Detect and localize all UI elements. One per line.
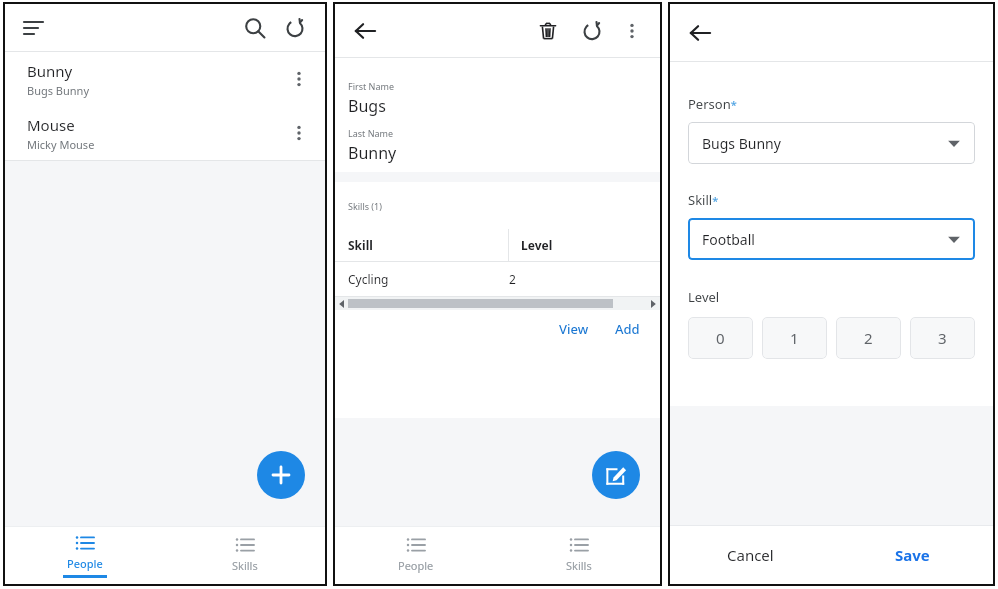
staticText: View <box>559 320 589 338</box>
staticText: People <box>398 558 434 573</box>
button[interactable]: 1 <box>762 317 827 359</box>
button[interactable]: Delete <box>532 15 564 47</box>
button[interactable]: People <box>335 527 497 584</box>
button[interactable]: More options <box>618 17 646 45</box>
button[interactable]: 2 <box>836 317 901 359</box>
button[interactable]: Back <box>684 17 716 49</box>
staticText: Last Name <box>348 127 394 139</box>
button[interactable]: Mouse <box>5 106 325 160</box>
staticText: People <box>67 556 103 571</box>
staticText: Bugs Bunny <box>702 134 947 153</box>
staticText: First Name <box>348 80 394 92</box>
button[interactable]: More options <box>285 119 313 147</box>
button[interactable]: Skills <box>497 527 660 584</box>
staticText: Football <box>702 230 947 249</box>
button[interactable]: Football <box>688 218 975 260</box>
staticText: Person* <box>688 95 737 113</box>
button[interactable]: Refresh <box>279 12 311 44</box>
button[interactable]: Add <box>609 316 646 342</box>
staticText: 0 <box>716 328 725 348</box>
button[interactable]: Save <box>831 526 993 584</box>
button[interactable]: Refresh <box>576 15 608 47</box>
staticText: Skills <box>232 558 258 573</box>
button[interactable]: Edit <box>592 451 640 499</box>
staticText: Bugs <box>348 95 386 117</box>
button[interactable]: View <box>553 316 595 342</box>
staticText: Cancel <box>727 545 774 565</box>
staticText: Bunny <box>348 142 397 164</box>
staticText: Level <box>688 288 720 306</box>
button[interactable]: Back <box>349 15 381 47</box>
staticText: Skills (1) <box>348 200 382 212</box>
staticText: 1 <box>790 328 799 348</box>
button[interactable]: Add person <box>257 451 305 499</box>
staticText: Bugs Bunny <box>27 83 89 98</box>
staticText: 2 <box>864 328 873 348</box>
staticText: 2 <box>509 271 516 287</box>
staticText: Add <box>615 320 640 338</box>
button[interactable]: Sort <box>19 13 49 43</box>
staticText: Cycling <box>348 271 509 287</box>
button[interactable]: 0 <box>688 317 753 359</box>
button[interactable]: Cancel <box>670 526 831 584</box>
staticText: Skills <box>566 558 592 573</box>
staticText: Mouse <box>27 115 75 135</box>
staticText: Skill* <box>688 191 719 209</box>
button[interactable]: People <box>5 527 165 584</box>
button[interactable]: Bugs Bunny <box>688 122 975 164</box>
staticText: Skill <box>348 237 508 253</box>
button[interactable]: Bunny <box>5 52 325 106</box>
staticText: Micky Mouse <box>27 137 95 152</box>
staticText: 3 <box>938 328 947 348</box>
staticText: Bunny <box>27 61 73 81</box>
button[interactable]: 3 <box>910 317 975 359</box>
staticText: Level <box>521 237 553 253</box>
button[interactable]: Search <box>239 12 271 44</box>
button[interactable]: More options <box>285 65 313 93</box>
staticText: Save <box>895 545 930 565</box>
button[interactable]: Skills <box>165 527 325 584</box>
